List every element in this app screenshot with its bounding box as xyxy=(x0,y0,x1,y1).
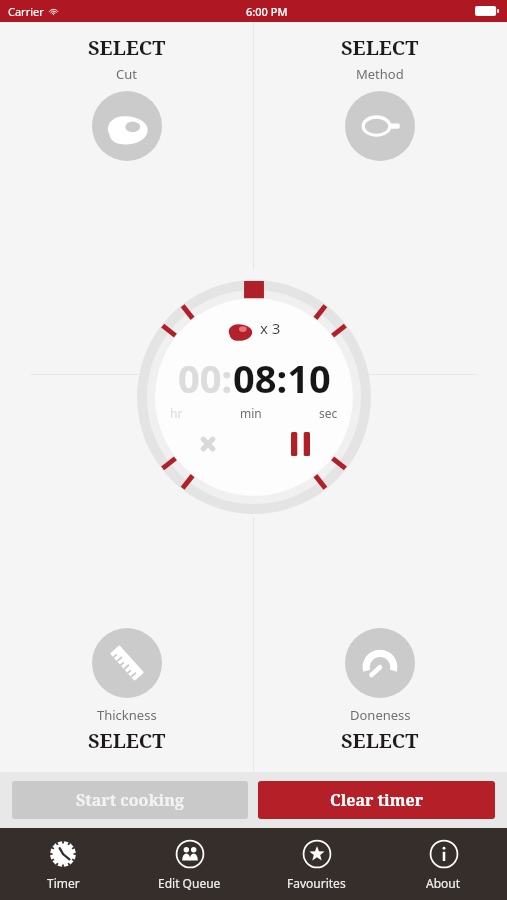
staticText: Start cooking xyxy=(76,789,184,811)
staticText: 08:10 xyxy=(233,352,331,404)
staticText: Carrier xyxy=(8,4,44,19)
staticText: hr xyxy=(170,405,183,421)
staticText: SELECT xyxy=(88,727,166,754)
button[interactable]: About xyxy=(380,828,507,900)
button[interactable]: Pause xyxy=(285,429,315,459)
staticText: SELECT xyxy=(341,34,419,61)
staticText: 00: xyxy=(178,352,233,404)
staticText: Timer xyxy=(47,875,80,891)
button[interactable]: Doneness xyxy=(253,624,507,758)
staticText: min xyxy=(240,405,262,421)
staticText: Edit Queue xyxy=(158,875,221,891)
button[interactable]: SELECT xyxy=(253,30,507,165)
staticText: Doneness xyxy=(350,706,411,724)
staticText: Thickness xyxy=(97,706,157,724)
button[interactable]: Start cooking xyxy=(12,781,248,819)
staticText: Favourites xyxy=(287,875,346,891)
staticText: Clear timer xyxy=(330,789,424,811)
button[interactable]: SELECT xyxy=(0,30,253,165)
staticText: SELECT xyxy=(88,34,166,61)
button[interactable]: Favourites xyxy=(253,828,380,900)
staticText: About xyxy=(426,875,461,891)
staticText: sec xyxy=(319,405,338,421)
staticText: Method xyxy=(356,65,404,83)
staticText: 6:00 PM xyxy=(246,4,288,19)
button[interactable]: Edit Queue xyxy=(126,828,253,900)
staticText: Cut xyxy=(116,65,137,83)
staticText: x 3 xyxy=(260,318,281,338)
button[interactable]: Timer xyxy=(0,828,126,900)
button[interactable]: Clear xyxy=(193,429,223,459)
button[interactable]: Clear timer xyxy=(258,781,495,819)
button[interactable]: Thickness xyxy=(0,624,253,758)
staticText: SELECT xyxy=(341,727,419,754)
